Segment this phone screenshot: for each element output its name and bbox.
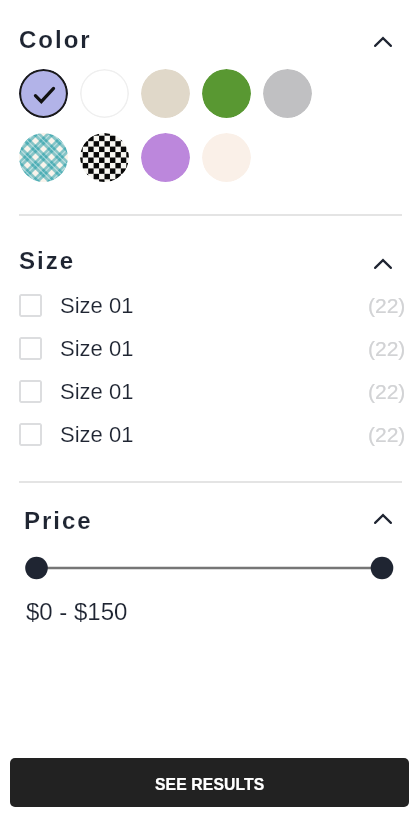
button[interactable]: Periwinkle [19,69,68,118]
button[interactable]: Checker [80,133,129,182]
staticText: Size 01 [60,336,134,361]
button[interactable]: Gray [263,69,312,118]
staticText: Size 01 [60,379,134,404]
staticText: Size [19,247,76,274]
button[interactable]: Green [202,69,251,118]
staticText: (22) [368,380,406,403]
other: Collapse Price [374,514,392,524]
button[interactable]: Color [0,22,418,56]
button[interactable]: White [80,69,129,118]
button[interactable]: SEE RESULTS [10,758,409,807]
button[interactable]: Size 01 [0,413,418,456]
button[interactable]: Size 01 [0,284,418,327]
staticText: Color [19,26,92,53]
button[interactable]: Purple [141,133,190,182]
button[interactable]: Beige [141,69,190,118]
staticText: SEE RESULTS [155,776,265,794]
button[interactable]: Plaid [19,133,68,182]
staticText: $0 - $150 [26,598,128,625]
button[interactable]: Size [0,243,418,277]
staticText: (22) [368,294,406,317]
button[interactable]: Cream [202,133,251,182]
button[interactable]: Price [0,503,418,537]
staticText: Price [24,507,93,534]
staticText: (22) [368,337,406,360]
staticText: (22) [368,423,406,446]
other: Collapse Color [374,37,392,47]
button[interactable]: Size 01 [0,327,418,370]
other: Collapse Size [374,259,392,269]
button[interactable]: Size 01 [0,370,418,413]
staticText: Size 01 [60,422,134,447]
staticText: Size 01 [60,293,134,318]
